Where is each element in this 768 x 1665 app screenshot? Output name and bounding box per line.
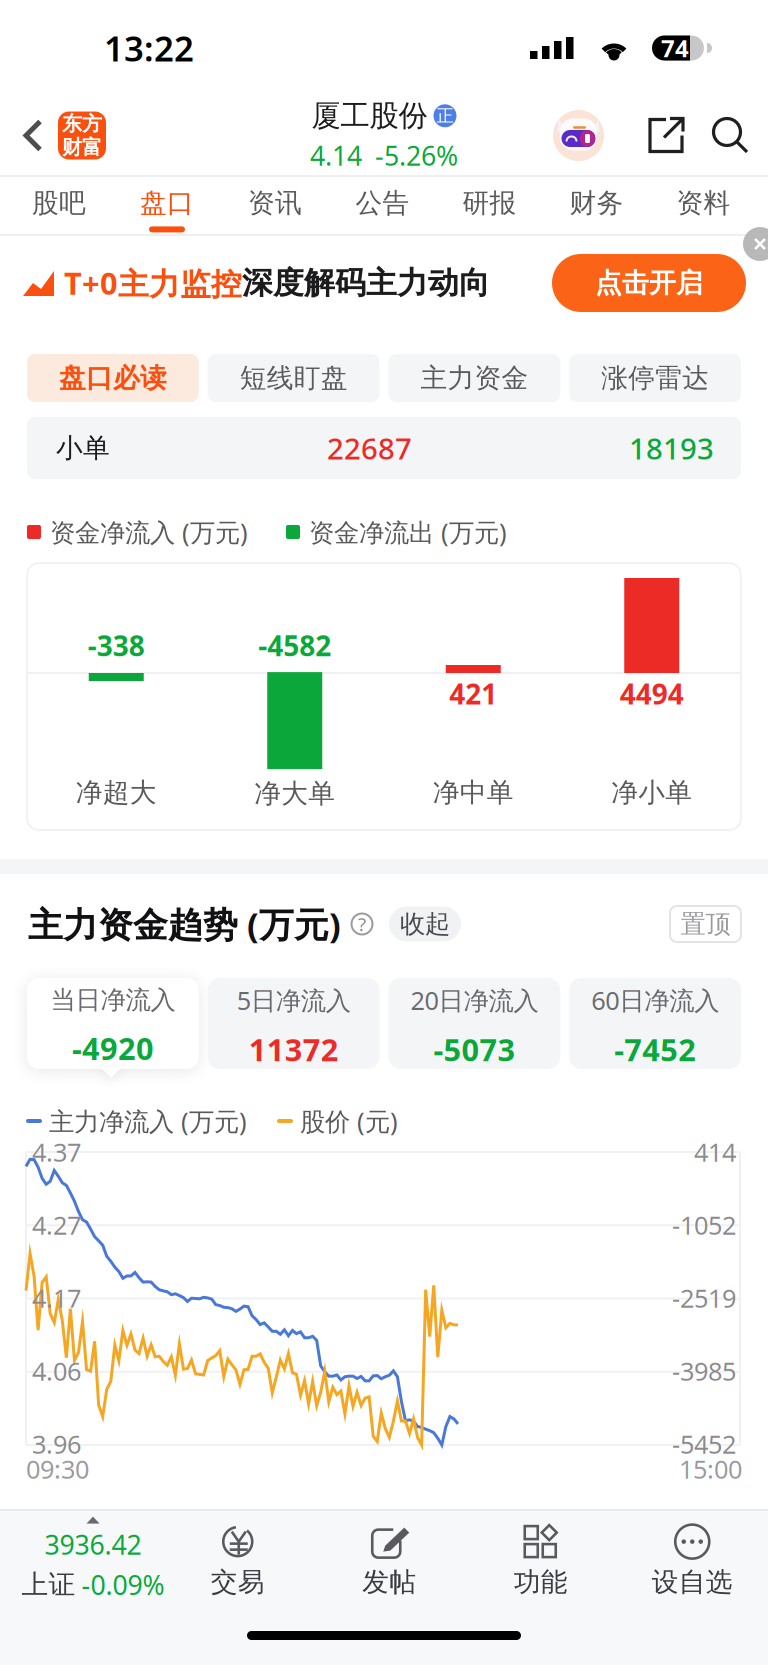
button[interactable]: 当日净流入 xyxy=(27,978,199,1069)
button[interactable]: 60日净流入 xyxy=(569,978,741,1069)
staticText: 置顶 xyxy=(680,908,730,939)
staticText: -4920 xyxy=(72,1028,154,1068)
staticText: 收起 xyxy=(400,908,450,939)
button[interactable]: Help xyxy=(351,913,373,935)
staticText: 5日净流入 xyxy=(237,983,351,1017)
staticText: 4494 xyxy=(620,675,684,712)
staticText: -4582 xyxy=(258,627,331,664)
staticText: 资金净流入 (万元) xyxy=(50,515,248,549)
staticText: 资金净流出 (万元) xyxy=(309,515,507,549)
staticText: -5073 xyxy=(433,1029,515,1070)
staticText: 3.96 xyxy=(32,1427,81,1461)
staticText: -7452 xyxy=(614,1029,696,1070)
staticText: -338 xyxy=(88,627,145,664)
staticText: 4.06 xyxy=(32,1354,81,1388)
staticText: 点击开启 xyxy=(595,267,703,299)
staticText: 财务 xyxy=(569,187,623,219)
staticText: 净小单 xyxy=(611,776,692,809)
staticText: 净超大 xyxy=(76,776,157,809)
button[interactable]: Share xyxy=(626,99,708,171)
staticText: 20日净流入 xyxy=(410,983,538,1017)
staticText: 3936.42 xyxy=(44,1527,141,1562)
button[interactable]: AI assistant xyxy=(551,108,606,163)
staticText: 主力净流入 (万元) xyxy=(49,1104,247,1138)
staticText: 厦工股份 xyxy=(311,98,427,134)
staticText: 资讯 xyxy=(248,187,302,219)
staticText: ? xyxy=(358,912,366,936)
button[interactable]: East Money xyxy=(58,111,106,159)
staticText: 4.17 xyxy=(32,1281,81,1315)
staticText: 74 xyxy=(661,32,689,64)
button[interactable]: 公告 xyxy=(329,177,436,234)
staticText: 22687 xyxy=(327,428,412,467)
button[interactable]: 功能 xyxy=(465,1511,616,1606)
staticText: 正 xyxy=(436,105,453,126)
button[interactable]: 设自选 xyxy=(616,1511,768,1606)
staticText: 发帖 xyxy=(362,1566,416,1598)
staticText: 公告 xyxy=(355,187,409,219)
staticText: 交易 xyxy=(211,1566,265,1598)
staticText: 421 xyxy=(449,675,497,712)
button[interactable]: 财务 xyxy=(543,177,650,234)
staticText: -2519 xyxy=(672,1281,736,1315)
staticText: 研报 xyxy=(462,187,516,219)
staticText: -0.09% xyxy=(81,1567,164,1602)
staticText: 股吧 xyxy=(32,187,86,219)
button[interactable]: 盘口 xyxy=(113,177,221,234)
staticText: -5452 xyxy=(672,1427,736,1461)
staticText: 4.37 xyxy=(32,1135,81,1169)
staticText: -1052 xyxy=(672,1208,736,1242)
button[interactable]: 盘口必读 xyxy=(27,354,199,402)
staticText: 财富 xyxy=(62,135,102,160)
button[interactable]: Search xyxy=(708,99,768,171)
staticText: 主力资金 xyxy=(420,362,528,394)
button[interactable]: Close ad xyxy=(743,227,768,261)
button[interactable]: 收起 xyxy=(389,906,461,941)
staticText: 主力资金趋势 (万元) xyxy=(28,901,341,947)
button[interactable]: T+0主力监控 xyxy=(0,236,768,330)
staticText: 东方 xyxy=(62,111,102,136)
staticText: 当日净流入 xyxy=(50,985,175,1016)
button[interactable]: 资料 xyxy=(650,177,757,234)
button[interactable]: 涨停雷达 xyxy=(569,354,741,402)
staticText: 盘口必读 xyxy=(59,362,167,394)
button[interactable]: 股吧 xyxy=(5,177,113,234)
staticText: 资料 xyxy=(676,187,730,219)
staticText: 上证 xyxy=(21,1568,75,1601)
staticText: 盘口 xyxy=(140,187,194,219)
button[interactable]: 5日净流入 xyxy=(208,978,380,1069)
staticText: -5.26% xyxy=(375,138,458,173)
button[interactable]: 研报 xyxy=(436,177,543,234)
staticText: 18193 xyxy=(629,428,714,467)
staticText: T+0主力监控 xyxy=(64,263,242,303)
staticText: 小单 xyxy=(56,432,110,464)
staticText: 净中单 xyxy=(433,776,514,809)
button[interactable]: 主力资金 xyxy=(388,354,560,402)
button[interactable]: 20日净流入 xyxy=(388,978,560,1069)
button[interactable]: 置顶 xyxy=(670,906,741,942)
staticText: -3985 xyxy=(672,1354,736,1388)
staticText: 净大单 xyxy=(254,777,335,810)
button[interactable]: 资讯 xyxy=(221,177,329,234)
button[interactable]: 交易 xyxy=(162,1511,313,1606)
staticText: 60日净流入 xyxy=(591,983,719,1017)
staticText: 09:30 xyxy=(26,1452,89,1486)
staticText: 11372 xyxy=(249,1029,339,1070)
staticText: 4.27 xyxy=(32,1208,81,1242)
staticText: 深度解码主力动向 xyxy=(242,264,490,302)
staticText: 13:22 xyxy=(104,25,194,71)
staticText: 股价 (元) xyxy=(300,1104,398,1138)
staticText: 功能 xyxy=(514,1566,568,1598)
staticText: 414 xyxy=(694,1135,736,1169)
staticText: 15:00 xyxy=(679,1452,742,1486)
button[interactable]: 发帖 xyxy=(313,1511,465,1606)
button[interactable]: 上证 index xyxy=(0,1511,162,1606)
staticText: 涨停雷达 xyxy=(601,362,709,394)
staticText: 设自选 xyxy=(652,1566,733,1598)
staticText: 4.14 xyxy=(310,138,362,173)
button[interactable]: Back xyxy=(0,99,58,171)
staticText: 短线盯盘 xyxy=(240,362,348,394)
button[interactable]: 短线盯盘 xyxy=(208,354,380,402)
